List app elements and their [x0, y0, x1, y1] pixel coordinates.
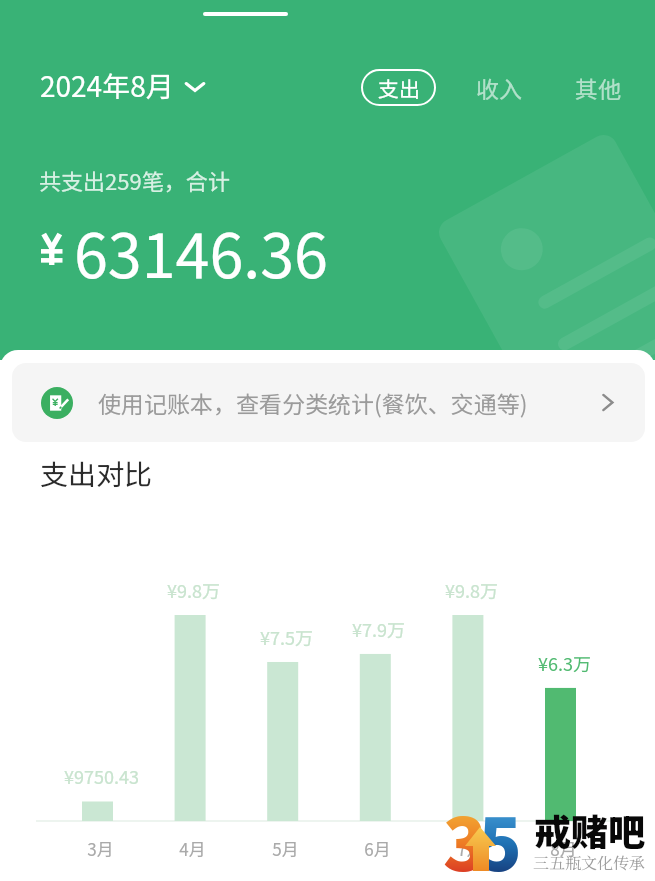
staticText: 4月	[179, 836, 206, 861]
staticText: ¥9750.43	[64, 763, 139, 789]
staticText: 收入	[476, 71, 522, 104]
button[interactable]: 收入	[464, 69, 534, 106]
staticText: 3月	[87, 836, 114, 861]
staticText: ¥9.8万	[445, 577, 498, 603]
staticText: ¥7.5万	[260, 624, 313, 650]
button[interactable]: 使用记账本，查看分类统计(餐饮、交通等)	[12, 363, 645, 442]
staticText: 5月	[272, 836, 299, 861]
staticText: 63146.36	[74, 207, 328, 295]
staticText: 7月	[457, 836, 484, 861]
staticText: 8月	[550, 836, 577, 861]
staticText: 5	[478, 787, 522, 881]
staticText: ¥9.8万	[167, 577, 220, 603]
staticText: 支出对比	[40, 453, 153, 494]
staticText: 共支出259笔，合计	[39, 164, 230, 196]
staticText: 2024年8月	[40, 65, 174, 106]
button[interactable]: 支出	[361, 69, 436, 106]
staticText: 支出	[378, 73, 420, 103]
staticText: 戒赌吧	[534, 803, 645, 857]
other: More	[598, 393, 617, 412]
staticText: 三五瓶文化传承	[533, 851, 646, 874]
staticText: 6月	[364, 836, 391, 861]
staticText: ¥7.9万	[352, 616, 405, 642]
button[interactable]: 其他	[563, 69, 633, 106]
staticText: ¥6.3万	[538, 650, 591, 676]
staticText: 其他	[575, 71, 621, 104]
button[interactable]: 2024年8月	[40, 65, 205, 106]
staticText: 使用记账本，查看分类统计(餐饮、交通等)	[98, 386, 528, 419]
staticText: 3	[443, 787, 487, 881]
